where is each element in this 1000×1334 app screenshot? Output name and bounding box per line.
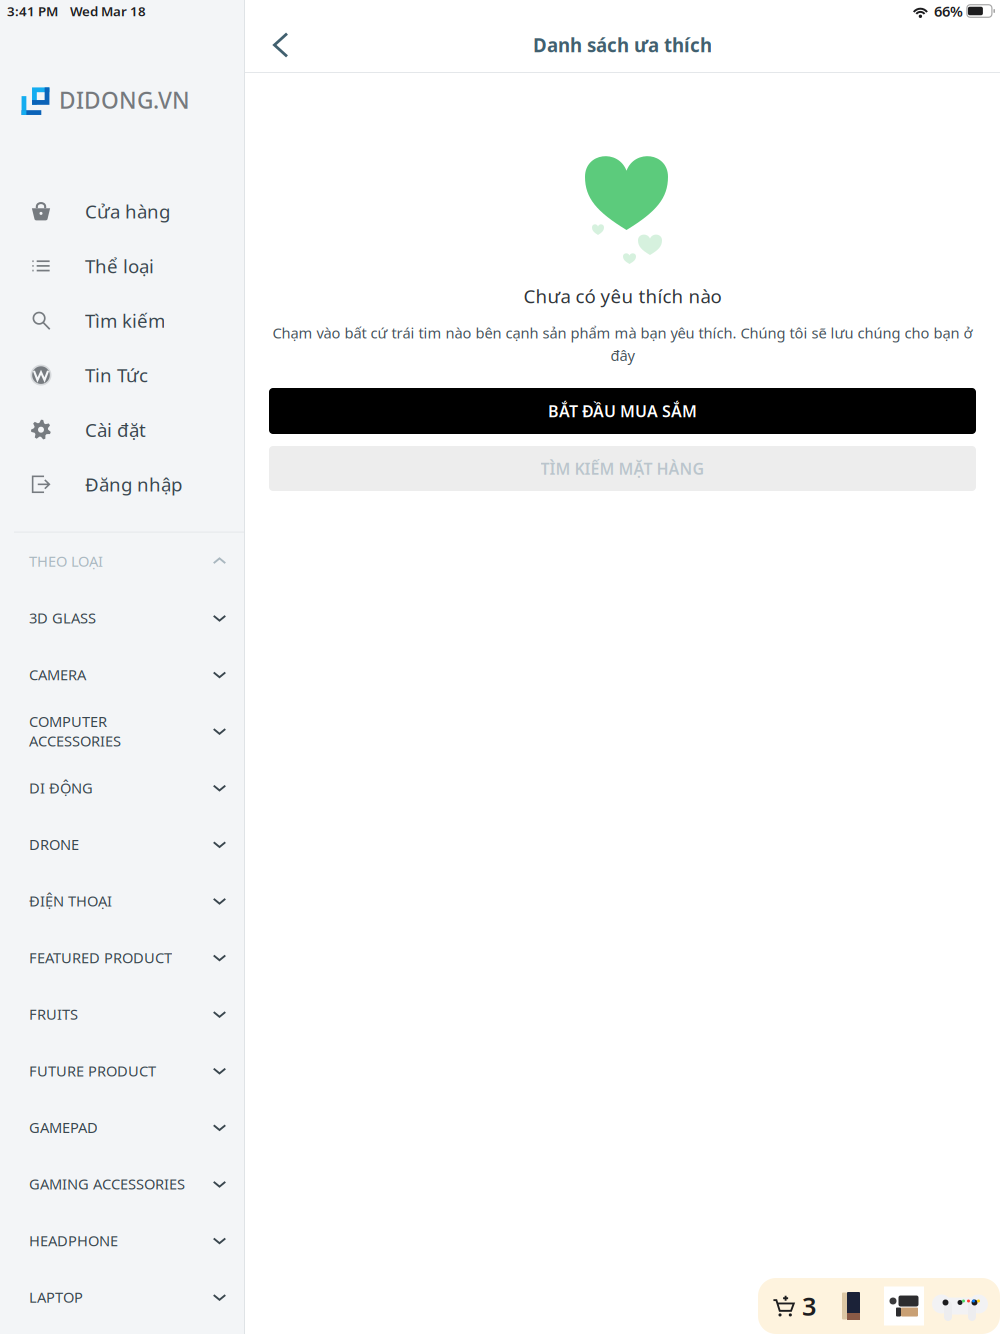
button[interactable]: BẮT ĐẦU MUA SẮM [269,388,976,434]
button[interactable]: COMPUTER ACCESSORIES [0,703,244,759]
button[interactable]: Cart, 3 items [758,1278,826,1334]
button[interactable]: GAMING ACCESSORIES [0,1156,244,1212]
button[interactable]: Gamepad product [932,1278,988,1334]
button[interactable]: ĐIỆN THOẠI [0,873,244,929]
staticText: FUTURE PRODUCT [29,1061,156,1080]
button[interactable]: FEATURED PRODUCT [0,929,244,986]
staticText: ĐIỆN THOẠI [29,891,112,911]
staticText: DI ĐỘNG [29,778,93,797]
button[interactable]: Đăng nhập [0,457,244,512]
staticText: BẮT ĐẦU MUA SẮM [548,400,697,422]
button[interactable]: Cài đặt [0,402,244,457]
staticText: Tìm kiếm [85,308,165,333]
button[interactable]: LAPTOP [0,1269,244,1325]
button[interactable]: TÌM KIẾM MẶT HÀNG [269,446,976,491]
staticText: FEATURED PRODUCT [29,948,172,967]
button[interactable]: FUTURE PRODUCT [0,1042,244,1099]
staticText: DIDONG.VN [59,85,190,115]
staticText: DRONE [29,835,79,854]
staticText: COMPUTER ACCESSORIES [29,712,121,751]
staticText: Đăng nhập [85,472,182,497]
staticText: GAMING ACCESSORIES [29,1174,185,1194]
staticText: FRUITS [29,1004,78,1024]
staticText: LAPTOP [29,1287,83,1307]
button[interactable]: Thể loại [0,239,244,293]
button[interactable]: 3D GLASS [0,590,244,646]
button[interactable]: Tablet product [826,1278,876,1334]
button[interactable]: GAMEPAD [0,1099,244,1156]
staticText: 3D GLASS [29,608,96,628]
staticText: TÌM KIẾM MẶT HÀNG [540,458,704,479]
button[interactable]: Cửa hàng [0,184,244,239]
button[interactable]: DI ĐỘNG [0,759,244,816]
button[interactable]: CAMERA [0,646,244,703]
button[interactable]: Tìm kiếm [0,293,244,348]
button[interactable]: VR headset product [876,1278,932,1334]
staticText: THEO LOẠI [29,551,103,571]
button[interactable]: Tin Tức [0,348,244,402]
staticText: Wed Mar 18 [70,2,146,20]
button[interactable]: HEADPHONE [0,1212,244,1269]
staticText: Danh sách ưa thích [533,33,712,57]
staticText: Thể loại [85,253,154,278]
staticText: 3 [802,1289,816,1323]
staticText: CAMERA [29,665,86,684]
staticText: Tin Tức [85,363,148,387]
button[interactable]: Back [259,23,303,67]
staticText: HEADPHONE [29,1231,118,1250]
staticText: đây [610,345,634,365]
staticText: 66% [934,1,963,21]
staticText: Cài đặt [85,417,146,442]
staticText: Chưa có yêu thích nào [523,284,721,308]
staticText: GAMEPAD [29,1118,98,1137]
staticText: 3:41 PM [7,2,58,20]
button[interactable]: THEO LOẠI [0,533,244,590]
staticText: Chạm vào bất cứ trái tim nào bên cạnh sả… [272,323,972,342]
staticText: Cửa hàng [85,199,170,224]
button[interactable]: FRUITS [0,986,244,1042]
button[interactable]: DRONE [0,816,244,873]
